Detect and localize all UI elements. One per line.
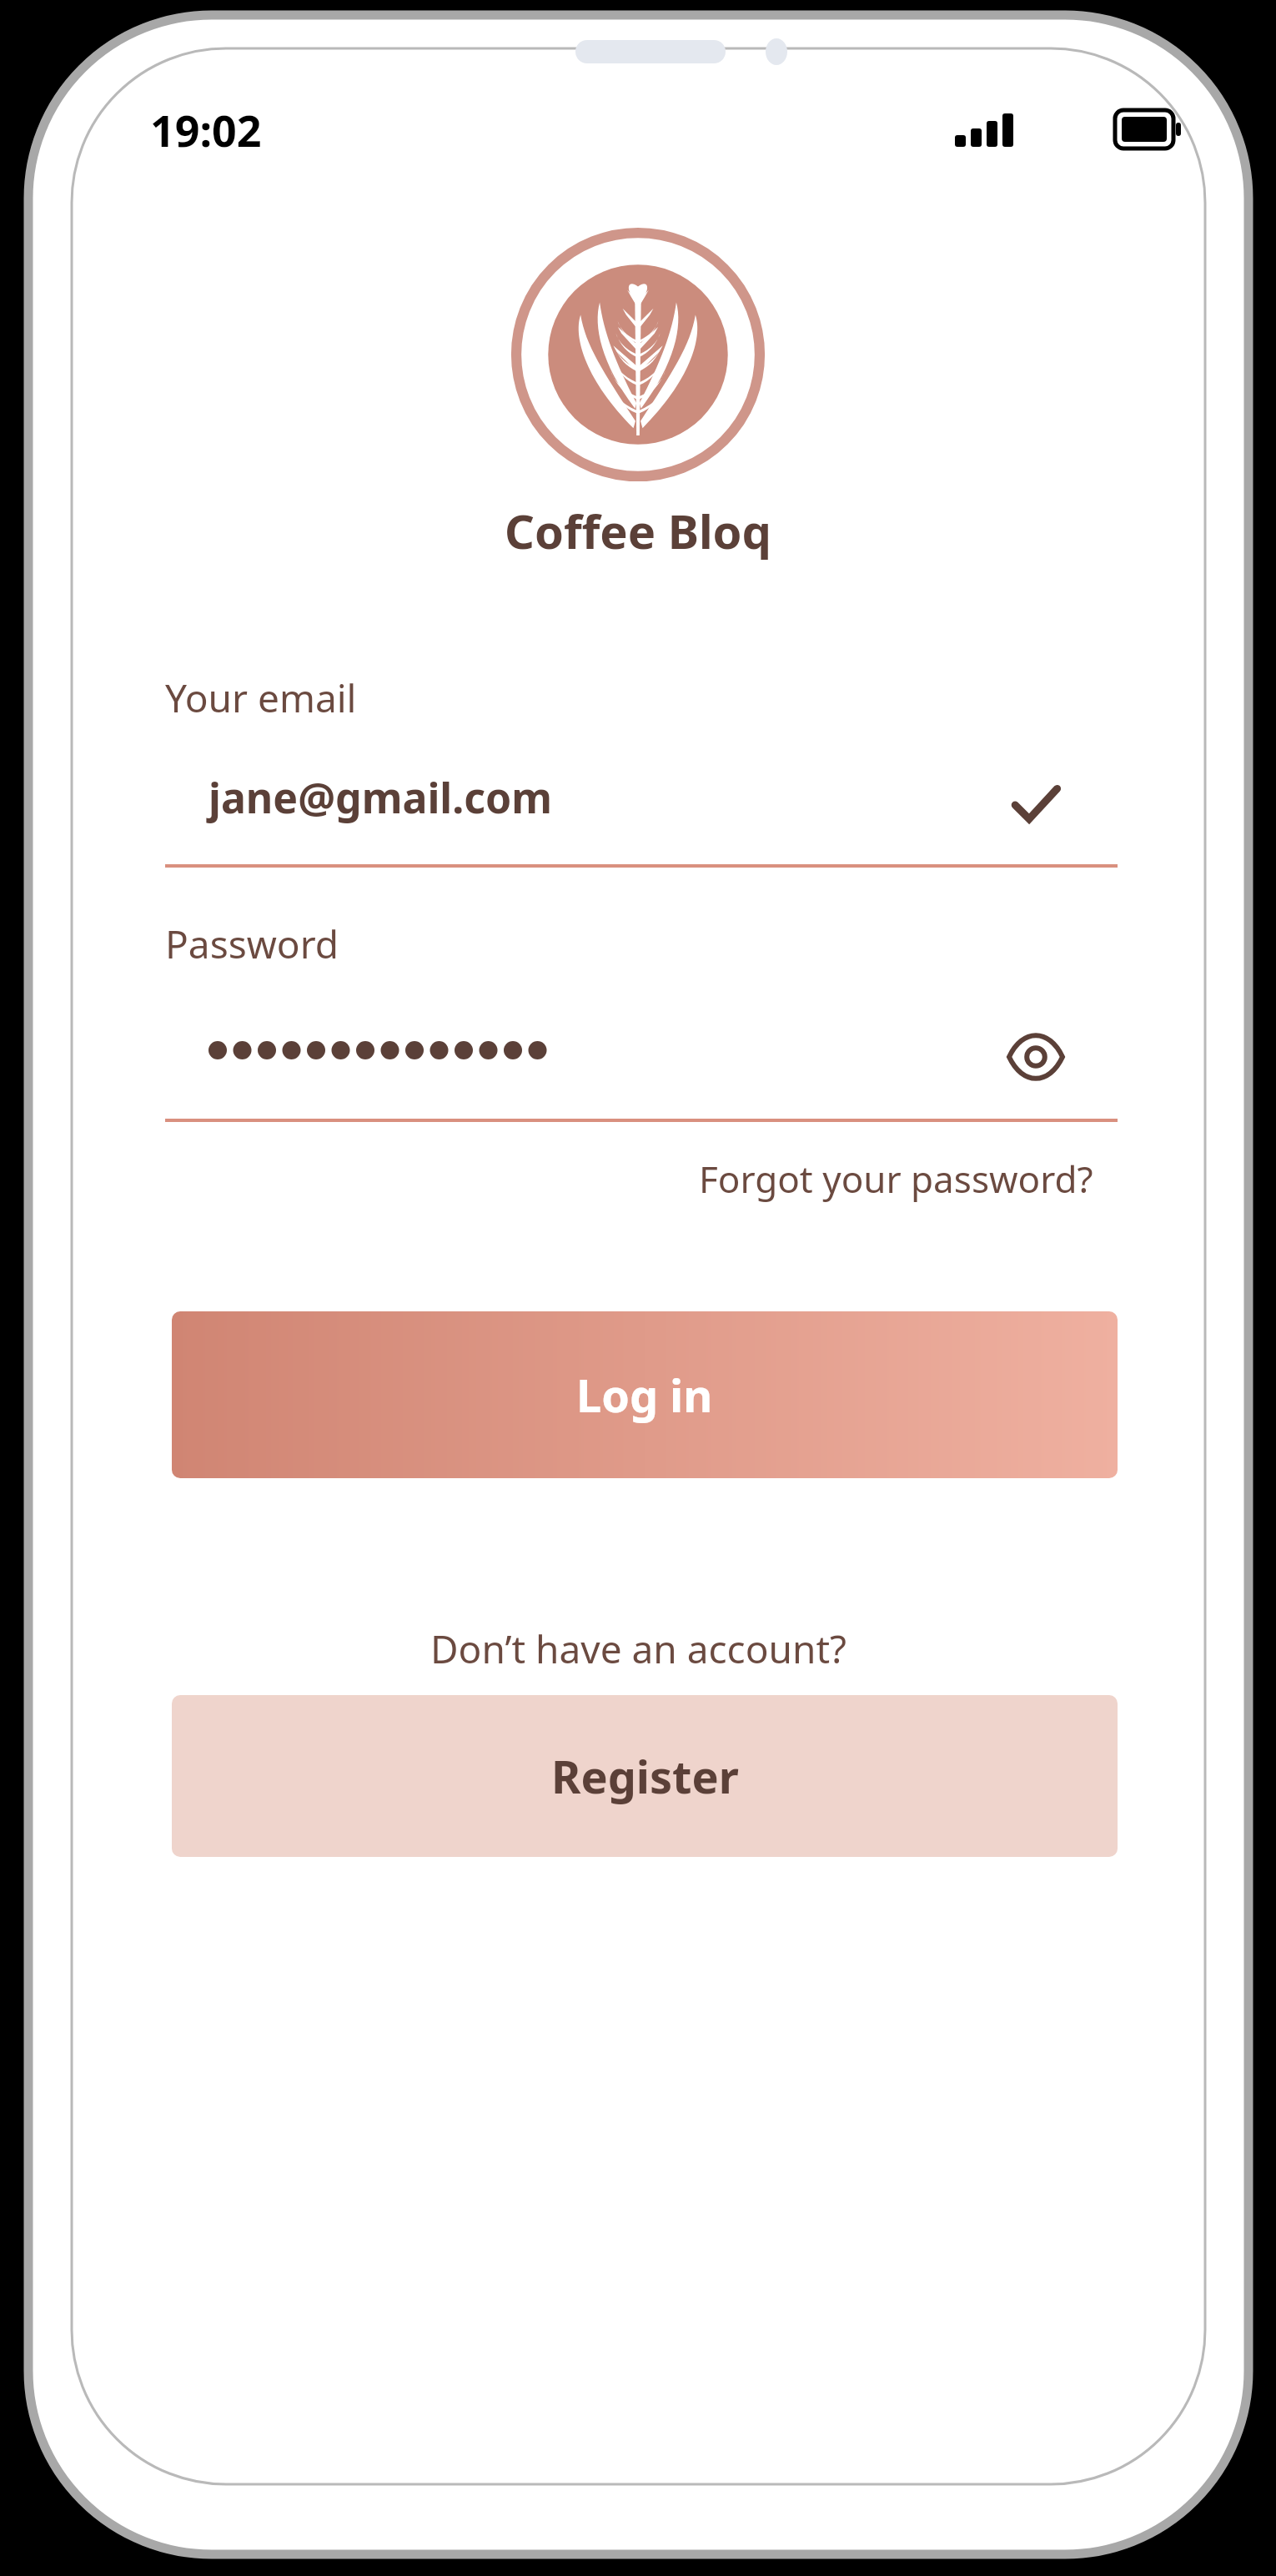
other: Show password (1002, 1024, 1069, 1090)
other: Email valid (1006, 776, 1064, 834)
staticText: Log in (576, 1364, 713, 1426)
staticText: jane@gmail.com (208, 769, 553, 826)
button[interactable]: Log in (172, 1311, 1118, 1478)
staticText: Register (551, 1745, 739, 1807)
staticText: Your email (165, 672, 357, 724)
button[interactable]: Show password (165, 1005, 1118, 1122)
button[interactable]: Register (172, 1695, 1118, 1857)
button[interactable]: jane@gmail.com (165, 751, 1118, 868)
staticText: Coffee Bloq (505, 499, 771, 562)
staticText: Don’t have an account? (430, 1623, 846, 1675)
button[interactable]: Forgot your password? (692, 1147, 1100, 1210)
staticText: 19:02 (150, 100, 262, 159)
staticText: Password (165, 918, 339, 970)
staticText: Forgot your password? (699, 1154, 1093, 1204)
